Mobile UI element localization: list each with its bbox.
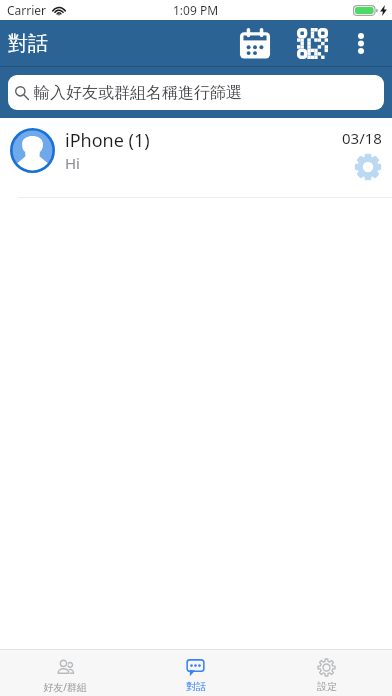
- staticText: iPhone (1): [65, 128, 150, 153]
- staticText: 對話: [8, 31, 48, 56]
- button[interactable]: Calendar: [231, 20, 279, 66]
- button[interactable]: Settings: [354, 153, 382, 181]
- button[interactable]: 設定: [261, 650, 392, 696]
- staticText: 1:09 PM: [173, 2, 219, 18]
- button[interactable]: iPhone (1): [0, 118, 392, 198]
- staticText: Hi: [65, 153, 80, 173]
- staticText: 對話: [186, 680, 206, 693]
- staticText: 輸入好友或群組名稱進行篩選: [34, 83, 242, 103]
- button[interactable]: Scan QR code: [289, 20, 336, 66]
- staticText: 03/18: [342, 128, 382, 148]
- staticText: Carrier: [7, 2, 47, 18]
- button[interactable]: 輸入好友或群組名稱進行篩選: [8, 75, 384, 110]
- staticText: 好友/群組: [43, 680, 87, 694]
- staticText: 設定: [317, 680, 337, 693]
- button[interactable]: 好友/群組: [0, 650, 130, 696]
- button[interactable]: 對話: [130, 650, 261, 696]
- button[interactable]: More options: [340, 20, 381, 66]
